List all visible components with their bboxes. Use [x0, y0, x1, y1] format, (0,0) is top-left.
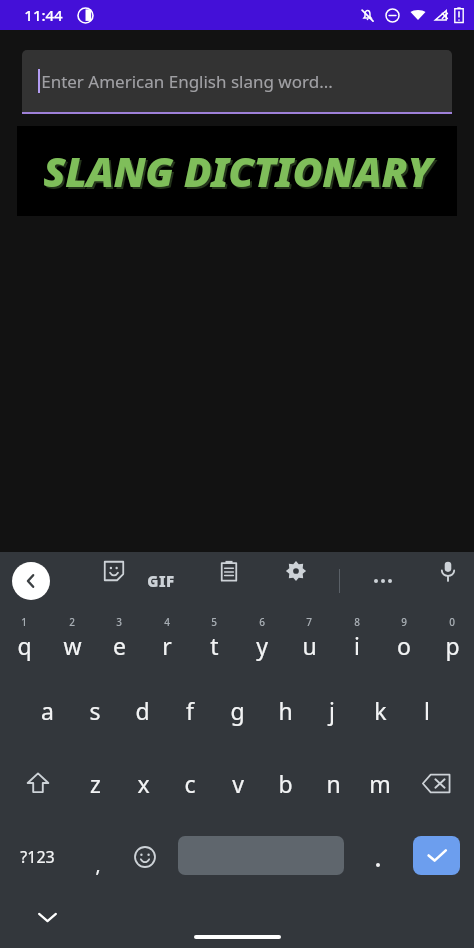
- staticText: m: [369, 768, 391, 799]
- staticText: u: [302, 630, 317, 661]
- staticText: Enter American English slang word...: [41, 70, 333, 93]
- button[interactable]: x: [119, 746, 167, 820]
- button[interactable]: Clipboard: [210, 552, 248, 590]
- staticText: x: [137, 768, 150, 799]
- staticText: y: [256, 630, 268, 661]
- staticText: z: [90, 768, 101, 799]
- staticText: r: [162, 630, 172, 661]
- button[interactable]: z: [71, 746, 119, 820]
- button[interactable]: 2: [48, 610, 96, 674]
- button[interactable]: Shift: [14, 746, 62, 820]
- button[interactable]: 7: [285, 610, 333, 674]
- button[interactable]: b: [261, 746, 309, 820]
- button[interactable]: 9: [380, 610, 428, 674]
- button[interactable]: 6: [238, 610, 286, 674]
- button[interactable]: ?123: [6, 820, 68, 894]
- button[interactable]: Stickers: [95, 552, 133, 590]
- staticText: h: [278, 695, 293, 726]
- button[interactable]: g: [213, 674, 261, 746]
- staticText: 2: [69, 615, 75, 629]
- staticText: f: [186, 695, 194, 726]
- button[interactable]: More options: [363, 561, 403, 601]
- button[interactable]: 4: [143, 610, 191, 674]
- button[interactable]: a: [23, 674, 71, 746]
- staticText: k: [374, 695, 387, 726]
- staticText: 6: [259, 615, 265, 629]
- staticText: SLANG DICTIONARY: [45, 145, 434, 201]
- button[interactable]: Settings: [277, 552, 315, 590]
- button[interactable]: n: [309, 746, 357, 820]
- button[interactable]: 8: [333, 610, 381, 674]
- staticText: i: [354, 630, 360, 661]
- button[interactable]: k: [356, 674, 404, 746]
- staticText: a: [41, 695, 54, 726]
- staticText: 9: [401, 615, 407, 629]
- staticText: 7: [306, 615, 312, 629]
- staticText: q: [17, 630, 32, 661]
- staticText: 4: [164, 615, 170, 629]
- button[interactable]: [356, 820, 400, 894]
- button[interactable]: h: [261, 674, 309, 746]
- button[interactable]: Enter American English slang word...: [22, 50, 452, 114]
- staticText: 5: [211, 615, 217, 629]
- button[interactable]: Backspace: [412, 746, 460, 820]
- button[interactable]: 5: [190, 610, 238, 674]
- staticText: 1: [21, 615, 27, 629]
- staticText: b: [278, 768, 293, 799]
- button[interactable]: Voice input: [429, 552, 467, 590]
- button[interactable]: f: [166, 674, 214, 746]
- staticText: l: [424, 695, 430, 726]
- button[interactable]: d: [118, 674, 166, 746]
- button[interactable]: ,: [76, 820, 120, 894]
- staticText: SLANG DICTIONARY: [43, 143, 432, 199]
- button[interactable]: Back: [12, 562, 50, 600]
- button[interactable]: l: [403, 674, 451, 746]
- button[interactable]: c: [166, 746, 214, 820]
- staticText: ,: [95, 852, 101, 878]
- staticText: p: [445, 630, 460, 661]
- staticText: d: [135, 695, 150, 726]
- staticText: 11:44: [24, 5, 63, 25]
- staticText: w: [63, 630, 82, 661]
- button[interactable]: j: [308, 674, 356, 746]
- button[interactable]: v: [214, 746, 262, 820]
- button[interactable]: 0: [428, 610, 474, 674]
- staticText: g: [230, 695, 245, 726]
- button[interactable]: Enter: [413, 836, 460, 875]
- staticText: 8: [354, 615, 360, 629]
- staticText: o: [397, 630, 411, 661]
- button[interactable]: Emoji: [122, 820, 168, 894]
- staticText: t: [210, 630, 219, 661]
- staticText: j: [329, 695, 335, 726]
- staticText: 0: [449, 615, 455, 629]
- button[interactable]: 3: [95, 610, 143, 674]
- staticText: s: [89, 695, 101, 726]
- button[interactable]: 1: [0, 610, 48, 674]
- staticText: c: [184, 768, 196, 799]
- staticText: ?123: [20, 846, 55, 868]
- staticText: e: [113, 630, 126, 661]
- staticText: n: [326, 768, 341, 799]
- button[interactable]: GIF: [141, 561, 181, 601]
- staticText: v: [232, 768, 244, 799]
- button[interactable]: s: [71, 674, 119, 746]
- button[interactable]: Hide keyboard: [27, 897, 67, 937]
- button[interactable]: Space: [178, 836, 344, 875]
- button[interactable]: m: [356, 746, 404, 820]
- staticText: 3: [116, 615, 122, 629]
- staticText: GIF: [147, 571, 175, 591]
